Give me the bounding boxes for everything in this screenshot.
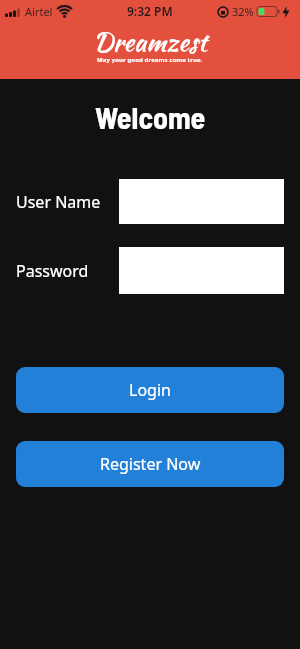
staticText: Airtel: [25, 4, 53, 19]
staticText: User Name: [16, 191, 101, 213]
button[interactable]: Register Now: [16, 441, 284, 487]
staticText: May your good dreams come true.: [97, 56, 203, 64]
staticText: 32%: [232, 4, 254, 19]
staticText: 9:32 PM: [127, 3, 173, 19]
staticText: Login: [129, 379, 171, 401]
staticText: Register Now: [100, 453, 201, 475]
staticText: Dreamzest: [93, 23, 207, 61]
staticText: Welcome: [95, 99, 206, 135]
staticText: Password: [16, 260, 89, 282]
button[interactable]: Login: [16, 367, 284, 413]
